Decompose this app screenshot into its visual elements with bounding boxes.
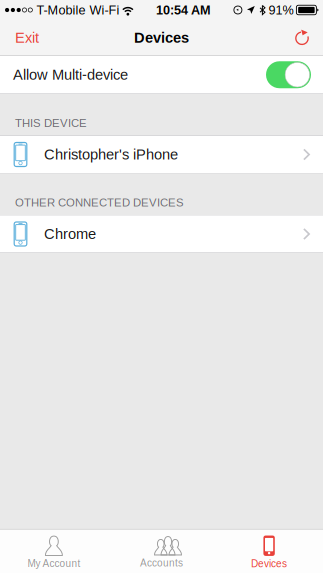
staticText: My Account — [27, 558, 80, 569]
staticText: Allow Multi-device — [13, 67, 128, 83]
button[interactable]: Exit — [0, 20, 51, 55]
staticText: THIS DEVICE — [15, 117, 87, 129]
button[interactable]: Devices — [215, 529, 323, 573]
button[interactable]: Refresh — [282, 20, 323, 55]
staticText: T-Mobile Wi-Fi — [36, 3, 119, 17]
staticText: Christopher's iPhone — [44, 146, 178, 163]
button[interactable]: Christopher's iPhone — [0, 136, 323, 173]
staticText: Devices — [134, 30, 189, 46]
staticText: Accounts — [140, 557, 183, 569]
button[interactable]: My Account — [0, 529, 108, 573]
staticText: Chrome — [44, 226, 96, 242]
staticText: Exit — [15, 30, 39, 46]
button[interactable]: Allow Multi-device — [266, 61, 311, 88]
button[interactable]: Accounts — [108, 529, 215, 573]
staticText: 10:54 AM — [156, 3, 211, 17]
staticText: Devices — [251, 558, 287, 569]
staticText: OTHER CONNECTED DEVICES — [15, 196, 184, 209]
staticText: 91% — [268, 3, 293, 17]
button[interactable]: Chrome — [0, 215, 323, 252]
